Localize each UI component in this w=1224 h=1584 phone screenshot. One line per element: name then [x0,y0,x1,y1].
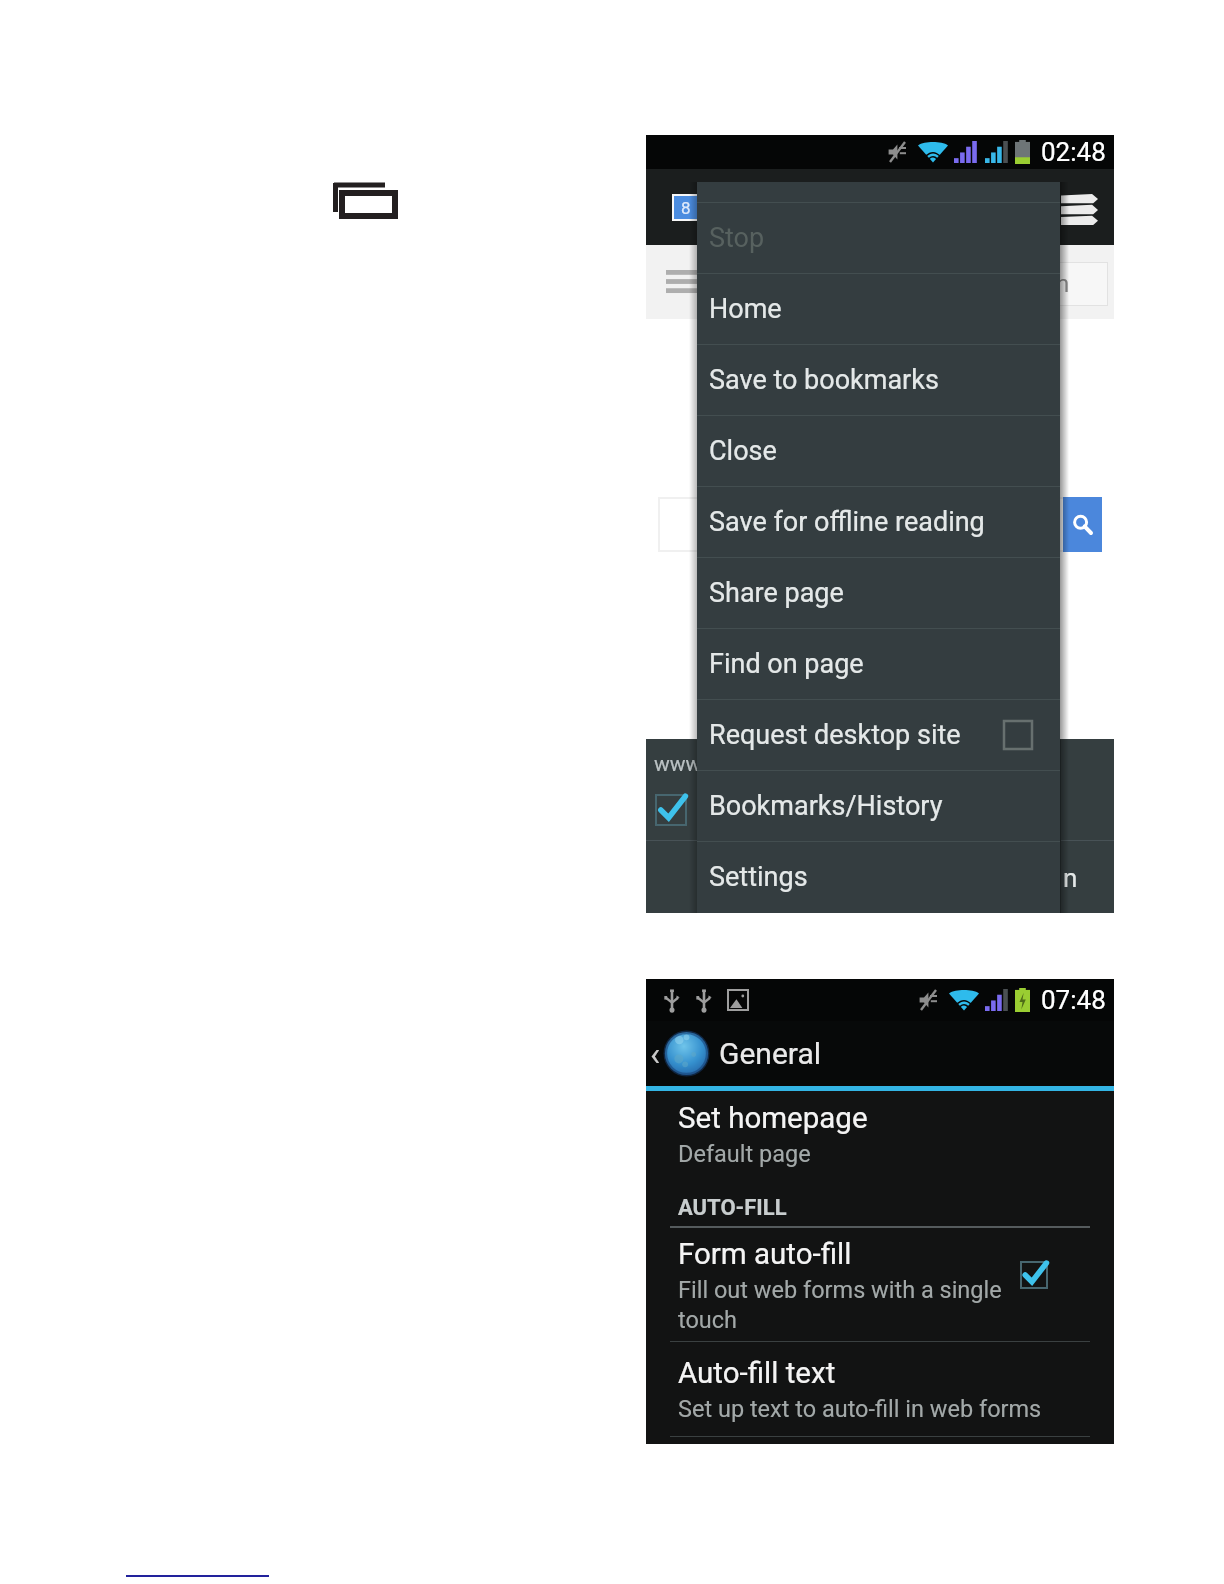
staticText: Form auto-fill [678,1237,852,1272]
button[interactable]: Stop [697,202,1060,273]
button[interactable]: n [1047,263,1107,305]
button[interactable]: Close [697,415,1060,486]
staticText: Set homepage [678,1101,868,1136]
button[interactable]: Settings [697,841,1060,912]
staticText: General [719,1036,822,1071]
staticText: Fill out web forms with a single touch [678,1276,1002,1333]
button[interactable]: ‹ [650,1031,822,1076]
staticText: Default page [678,1140,811,1168]
button[interactable]: Save to bookmarks [697,344,1060,415]
staticText: Save to bookmarks [709,364,939,396]
button[interactable]: Set homepage [646,1091,1114,1177]
staticText: Set up text to auto-fill in web forms [678,1395,1042,1423]
button[interactable]: Home [697,273,1060,344]
button[interactable]: Site icon [672,194,699,221]
staticText: Find on page [709,648,864,680]
staticText: Auto-fill text [678,1356,836,1391]
staticText: Share page [709,577,844,609]
button[interactable]: Menu [666,270,700,294]
staticText: Save for offline reading [709,506,985,538]
staticText: 07:48 [1041,985,1106,1015]
staticText: Stop [709,222,765,254]
button[interactable]: Share page [697,557,1060,628]
staticText: www [654,752,702,777]
button[interactable]: Windows / tabs [332,180,396,220]
button[interactable]: Request desktop site [697,699,1060,770]
button[interactable]: Form auto-fill [646,1228,1114,1341]
staticText: Home [709,293,782,325]
staticText: 02:48 [1041,137,1106,167]
button[interactable]: Search [1063,497,1102,552]
button[interactable]: Save for offline reading [697,486,1060,557]
staticText: ‹ [650,1034,661,1074]
button[interactable]: Auto-fill text [646,1342,1114,1436]
staticText: 8 [681,198,691,218]
staticText: Settings [709,861,808,893]
staticText: Request desktop site [709,719,961,751]
staticText: n [1056,270,1070,298]
staticText: AUTO-FILL [678,1195,787,1221]
button[interactable]: Find on page [697,628,1060,699]
staticText: Bookmarks/History [709,790,943,822]
button[interactable]: Bookmarks [1061,194,1098,225]
staticText: Close [709,435,777,467]
staticText: n [1063,863,1078,893]
button[interactable]: Bookmarks/History [697,770,1060,841]
